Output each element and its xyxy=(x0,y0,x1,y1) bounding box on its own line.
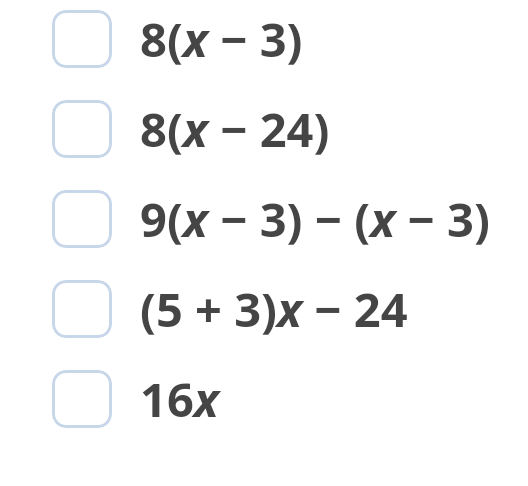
staticText: 8(x − 3) xyxy=(140,7,303,71)
staticText: 9(x − 3) − (x − 3) xyxy=(140,187,490,251)
button[interactable]: Answer option xyxy=(0,354,528,444)
staticText: 8(x − 24) xyxy=(140,97,330,161)
button[interactable]: Answer option xyxy=(0,264,528,354)
button[interactable]: Answer option xyxy=(0,84,528,174)
button[interactable]: Answer option xyxy=(0,0,528,84)
button[interactable]: Answer option xyxy=(0,174,528,264)
staticText: 16x xyxy=(140,367,219,431)
staticText: (5 + 3)x − 24 xyxy=(140,277,408,341)
